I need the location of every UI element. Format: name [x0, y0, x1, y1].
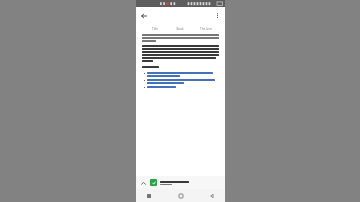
button[interactable]: Back — [138, 10, 149, 21]
button[interactable] — [142, 72, 219, 77]
button[interactable]: The Line — [193, 25, 219, 33]
staticText: The Line — [200, 27, 212, 31]
button[interactable]: Book — [167, 25, 193, 33]
button[interactable]: Home — [176, 191, 186, 201]
button[interactable]: Expand player — [139, 179, 147, 187]
staticText: Book — [176, 27, 184, 31]
button[interactable]: More options — [212, 10, 223, 21]
staticText: Title — [152, 27, 158, 31]
button[interactable]: Expand player — [136, 176, 225, 189]
button[interactable] — [142, 86, 219, 88]
button[interactable]: Title — [142, 25, 167, 33]
button[interactable]: Recent apps — [144, 191, 154, 201]
button[interactable] — [142, 79, 219, 84]
button[interactable]: Back — [207, 191, 217, 201]
